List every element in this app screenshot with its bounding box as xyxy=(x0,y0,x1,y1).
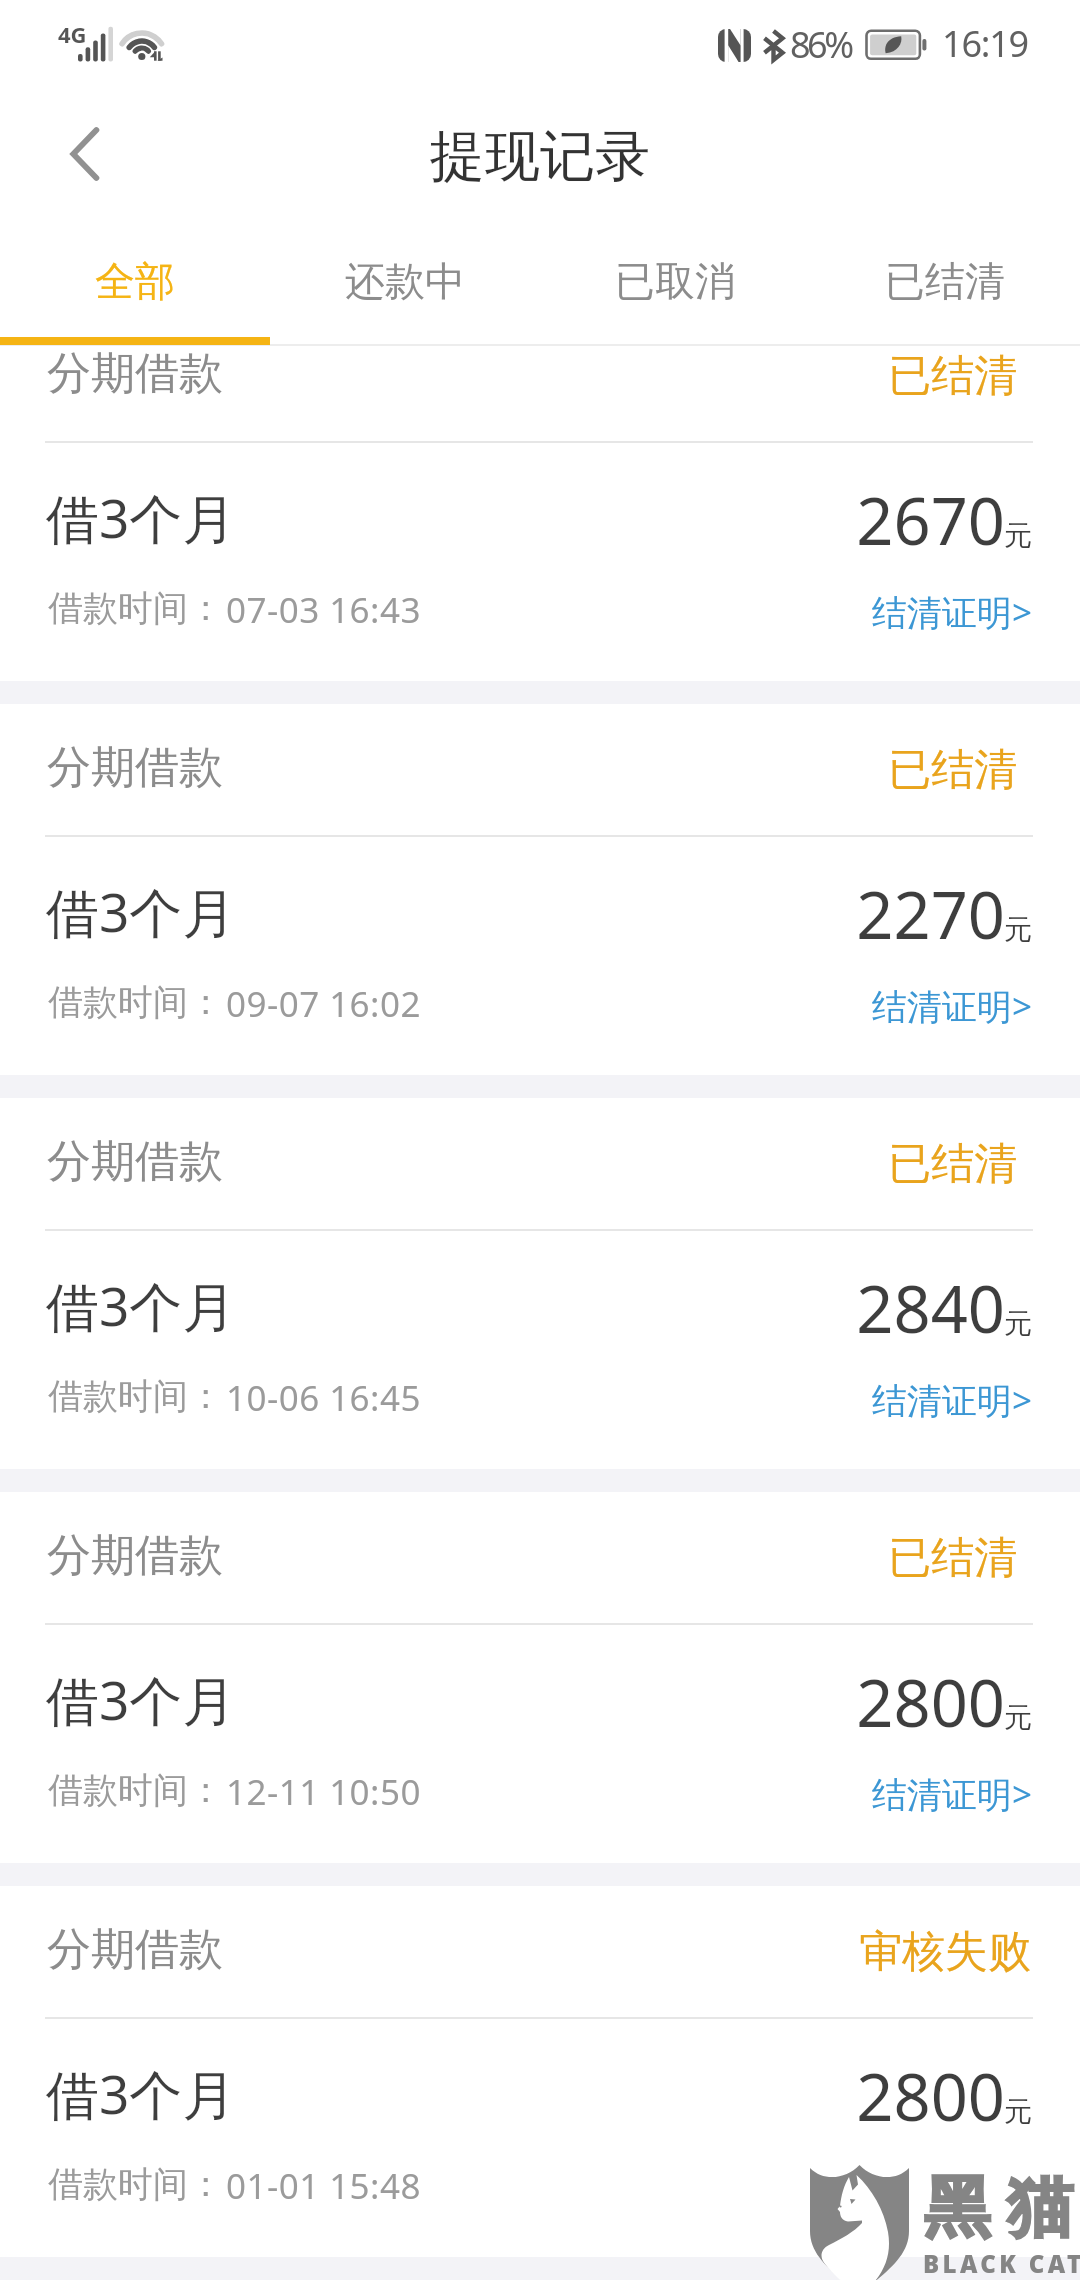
staticText: 2270 xyxy=(0,870,1005,959)
staticText: 借款时间： xyxy=(48,586,223,630)
staticText: 01-01 15:48 xyxy=(226,2162,421,2210)
staticText: 结清证明> xyxy=(872,1376,1033,1424)
button[interactable]: 分期借款 xyxy=(0,704,1080,1075)
staticText: 4G xyxy=(58,19,87,49)
staticText: 结清证明> xyxy=(872,982,1033,1030)
button[interactable]: 已取消 xyxy=(540,218,810,337)
staticText: 元 xyxy=(0,1700,1032,1735)
staticText: 元 xyxy=(0,2094,1032,2129)
staticText: 借款时间： xyxy=(48,2162,223,2206)
staticText: 结清证明> xyxy=(872,1770,1033,1818)
button[interactable]: 分期借款 xyxy=(0,1492,1080,1863)
staticText: 结清证明> xyxy=(872,588,1033,636)
staticText: 分期借款 xyxy=(47,1134,223,1189)
staticText: 已取消 xyxy=(615,256,735,306)
staticText: 2800 xyxy=(0,1658,1005,1747)
staticText: 已结清 xyxy=(885,256,1005,306)
staticText: 07-03 16:43 xyxy=(226,586,421,634)
staticText: 分期借款 xyxy=(47,1528,223,1583)
staticText: 借3个月 xyxy=(46,1269,236,1341)
staticText: 分期借款 xyxy=(47,1922,223,1977)
staticText: BLACK CAT xyxy=(923,2247,1080,2280)
staticText: 分期借款 xyxy=(47,346,223,401)
staticText: 已结清 xyxy=(0,1531,1017,1585)
staticText: 提现记录 xyxy=(0,122,1080,191)
button[interactable]: 分期借款 xyxy=(0,345,1080,681)
button[interactable]: Back xyxy=(30,100,140,218)
staticText: 已结清 xyxy=(0,743,1017,797)
button[interactable]: 已结清 xyxy=(810,218,1080,337)
staticText: 借3个月 xyxy=(46,875,236,947)
staticText: 猫 xyxy=(1007,2166,1073,2249)
staticText: 审核失败 xyxy=(0,1925,1031,1979)
button[interactable]: 还款中 xyxy=(270,218,540,337)
staticText: 全部 xyxy=(95,256,175,306)
staticText: 10-06 16:45 xyxy=(226,1374,421,1422)
staticText: 借3个月 xyxy=(46,2057,236,2129)
staticText: 09-07 16:02 xyxy=(226,980,421,1028)
button[interactable]: 结清证明> xyxy=(860,580,1033,644)
button[interactable]: 全部 xyxy=(0,218,270,337)
staticText: 86% xyxy=(790,20,851,69)
staticText: 分期借款 xyxy=(47,740,223,795)
staticText: 借款时间： xyxy=(48,1768,223,1812)
staticText: 12-11 10:50 xyxy=(226,1768,421,1816)
staticText: 元 xyxy=(0,518,1032,553)
button[interactable]: 结清证明> xyxy=(860,1368,1033,1432)
staticText: 借款时间： xyxy=(48,980,223,1024)
button[interactable]: 结清证明> xyxy=(860,1762,1033,1826)
staticText: 借3个月 xyxy=(46,481,236,553)
staticText: 2670 xyxy=(0,476,1005,565)
staticText: 借款时间： xyxy=(48,1374,223,1418)
staticText: 2840 xyxy=(0,1264,1005,1353)
button[interactable]: 结清证明> xyxy=(860,974,1033,1038)
staticText: 2800 xyxy=(0,2052,1005,2141)
staticText: 还款中 xyxy=(345,256,465,306)
button[interactable]: 分期借款 xyxy=(0,1886,1080,2257)
button[interactable]: 分期借款 xyxy=(0,1098,1080,1469)
staticText: 黑 xyxy=(924,2166,990,2249)
staticText: 16:19 xyxy=(942,19,1029,68)
staticText: 元 xyxy=(0,912,1032,947)
staticText: 借3个月 xyxy=(46,1663,236,1735)
staticText: 元 xyxy=(0,1306,1032,1341)
staticText: 已结清 xyxy=(0,349,1017,403)
staticText: 已结清 xyxy=(0,1137,1017,1191)
